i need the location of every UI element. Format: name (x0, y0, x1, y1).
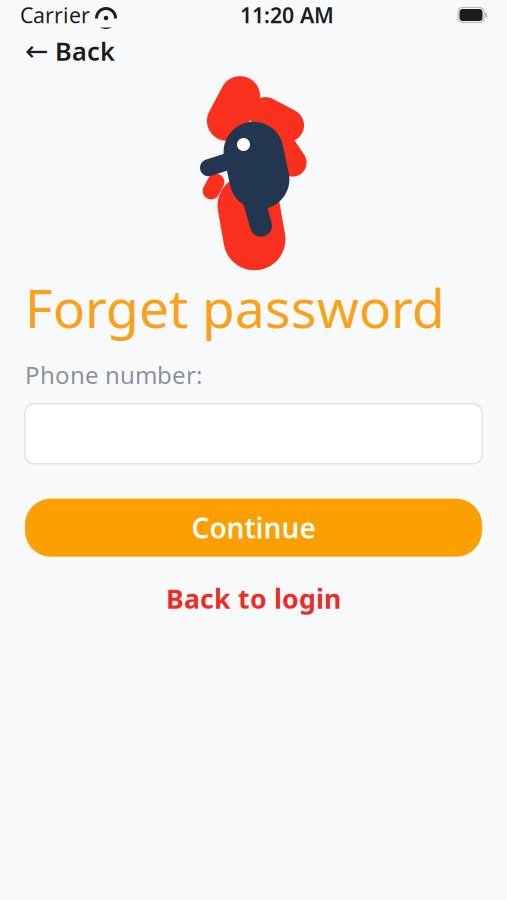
staticText: Carrier (20, 1, 90, 29)
staticText: Continue (191, 509, 315, 546)
staticText: Forget password (25, 272, 445, 343)
staticText: Back to login (166, 581, 341, 616)
staticText: 11:20 AM (240, 1, 334, 29)
staticText: ← (25, 35, 48, 67)
button[interactable]: Back to login (150, 573, 357, 624)
button[interactable]: Continue (25, 499, 482, 557)
staticText: Back (55, 34, 115, 68)
staticText: Phone number: (25, 359, 202, 391)
button[interactable]: ← (21, 28, 119, 74)
